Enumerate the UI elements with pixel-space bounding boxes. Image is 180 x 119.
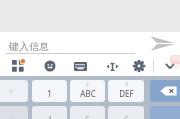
staticText: 1 <box>47 88 52 99</box>
staticText: 4 <box>47 114 52 119</box>
staticText: 3 <box>125 81 128 88</box>
staticText: 2 <box>86 81 89 88</box>
button[interactable]: Hide keyboard <box>162 58 178 74</box>
staticText: ABC <box>80 88 96 99</box>
staticText: 5 <box>85 114 90 119</box>
button[interactable]: Emoji <box>42 58 58 74</box>
button[interactable]: Symbols <box>0 80 28 102</box>
button[interactable]: 6 <box>108 106 144 119</box>
staticText: DEF <box>119 88 134 99</box>
button[interactable]: 2 <box>70 80 105 102</box>
button[interactable]: 3 <box>108 80 144 102</box>
button[interactable]: Move cursor <box>104 58 120 74</box>
button[interactable]: 1 <box>32 80 67 102</box>
button[interactable]: Backspace <box>150 80 180 102</box>
button[interactable]: 4 <box>32 106 67 119</box>
staticText: 键入信息 <box>9 40 49 53</box>
button[interactable]: Apps <box>10 58 26 74</box>
button[interactable]: Settings <box>131 58 147 74</box>
staticText: 6 <box>124 114 129 119</box>
button[interactable]: Keyboard <box>72 58 88 74</box>
button[interactable]: 5 <box>70 106 105 119</box>
button[interactable]: Send <box>146 32 178 54</box>
